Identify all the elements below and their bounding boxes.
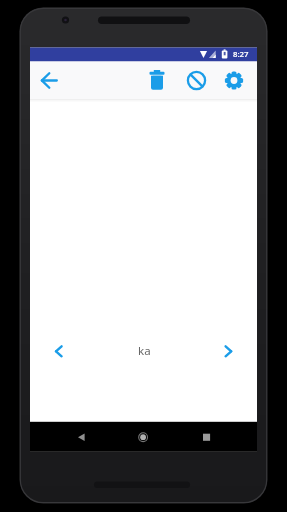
- button[interactable]: [141, 62, 172, 100]
- button[interactable]: [181, 62, 212, 100]
- button[interactable]: [188, 422, 225, 452]
- button[interactable]: ka: [122, 340, 166, 362]
- button[interactable]: [219, 62, 250, 100]
- button[interactable]: [33, 62, 63, 100]
- button[interactable]: [214, 337, 243, 366]
- button[interactable]: [44, 337, 73, 366]
- button[interactable]: [125, 422, 162, 452]
- button[interactable]: [64, 422, 101, 452]
- staticText: 8:27: [233, 49, 249, 60]
- staticText: ka: [138, 343, 151, 359]
